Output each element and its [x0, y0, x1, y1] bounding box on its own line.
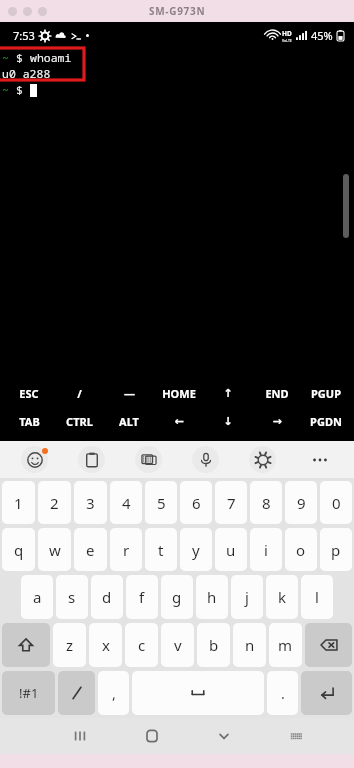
staticText: x: [102, 635, 110, 655]
button[interactable]: 7: [215, 481, 247, 524]
staticText: 7: [227, 493, 236, 513]
button[interactable]: ALT: [104, 407, 154, 435]
button[interactable]: More options: [291, 441, 348, 478]
button[interactable]: Home: [116, 718, 188, 754]
button[interactable]: 4: [110, 481, 142, 524]
button[interactable]: ,: [98, 671, 129, 715]
button[interactable]: PGDN: [301, 407, 350, 435]
button[interactable]: f: [126, 575, 158, 619]
staticText: o: [296, 540, 306, 560]
staticText: /: [77, 386, 82, 401]
button[interactable]: v: [161, 623, 194, 667]
button[interactable]: c: [125, 623, 158, 667]
staticText: u: [226, 540, 236, 560]
button[interactable]: Language: [58, 671, 95, 715]
staticText: r: [123, 540, 130, 560]
staticText: $: [9, 82, 30, 98]
staticText: PGDN: [310, 414, 342, 429]
button[interactable]: !#1: [2, 671, 55, 715]
button[interactable]: d: [91, 575, 123, 619]
button[interactable]: j: [231, 575, 263, 619]
button[interactable]: a: [21, 575, 53, 619]
staticText: !#1: [19, 684, 39, 702]
staticText: s: [68, 587, 76, 607]
staticText: whoami: [30, 50, 72, 66]
button[interactable]: 0: [320, 481, 352, 524]
button[interactable]: Keyboard layout: [260, 718, 332, 754]
button[interactable]: i: [250, 528, 282, 571]
button[interactable]: z: [53, 623, 86, 667]
button[interactable]: →: [252, 407, 301, 435]
button[interactable]: PGUP: [301, 379, 350, 407]
staticText: HOME: [162, 386, 196, 401]
button[interactable]: 8: [250, 481, 282, 524]
button[interactable]: e: [74, 528, 107, 571]
button[interactable]: g: [161, 575, 193, 619]
button[interactable]: 6: [180, 481, 212, 524]
button[interactable]: m: [269, 623, 302, 667]
button[interactable]: u: [215, 528, 247, 571]
staticText: TAB: [19, 414, 40, 429]
button[interactable]: l: [301, 575, 333, 619]
button[interactable]: ↓: [203, 407, 252, 435]
button[interactable]: s: [56, 575, 88, 619]
button[interactable]: r: [110, 528, 142, 571]
button[interactable]: x: [89, 623, 122, 667]
button[interactable]: t: [145, 528, 177, 571]
button[interactable]: Emoji: [6, 441, 63, 478]
button[interactable]: Space: [132, 671, 264, 715]
button[interactable]: /: [54, 379, 104, 407]
button[interactable]: p: [320, 528, 352, 571]
staticText: h: [207, 587, 217, 607]
button[interactable]: 1: [2, 481, 35, 524]
button[interactable]: y: [180, 528, 212, 571]
button[interactable]: n: [233, 623, 266, 667]
button[interactable]: b: [197, 623, 230, 667]
staticText: g: [172, 587, 182, 607]
staticText: k: [278, 587, 287, 607]
button[interactable]: q: [2, 528, 35, 571]
button[interactable]: w: [38, 528, 71, 571]
button[interactable]: ←: [154, 407, 203, 435]
staticText: ,: [112, 684, 116, 703]
staticText: ALT: [119, 414, 139, 429]
button[interactable]: 5: [145, 481, 177, 524]
staticText: j: [245, 587, 249, 607]
staticText: SM-G973N: [149, 4, 206, 18]
staticText: END: [265, 386, 289, 401]
button[interactable]: Clipboard: [63, 441, 120, 478]
button[interactable]: —: [104, 379, 154, 407]
staticText: b: [209, 635, 219, 655]
button[interactable]: Keyboard modes: [120, 441, 177, 478]
button[interactable]: Settings: [234, 441, 291, 478]
staticText: a: [33, 587, 42, 607]
button[interactable]: HOME: [154, 379, 203, 407]
button[interactable]: TAB: [4, 407, 54, 435]
staticText: —: [124, 386, 135, 401]
staticText: p: [331, 540, 341, 560]
button[interactable]: ↑: [203, 379, 252, 407]
button[interactable]: Recents: [44, 718, 116, 754]
staticText: PGUP: [311, 386, 341, 401]
button[interactable]: Backspace: [305, 623, 352, 667]
button[interactable]: Voice input: [177, 441, 234, 478]
button[interactable]: 3: [74, 481, 107, 524]
staticText: t: [158, 540, 164, 560]
button[interactable]: Shift: [2, 623, 50, 667]
staticText: 2: [50, 493, 59, 513]
button[interactable]: Hide keyboard: [188, 718, 260, 754]
button[interactable]: 2: [38, 481, 71, 524]
button[interactable]: Enter: [301, 671, 352, 715]
staticText: ESC: [19, 386, 39, 401]
button[interactable]: 9: [285, 481, 317, 524]
button[interactable]: k: [266, 575, 298, 619]
button[interactable]: CTRL: [54, 407, 104, 435]
staticText: 3: [86, 493, 95, 513]
button[interactable]: .: [267, 671, 298, 715]
button[interactable]: ESC: [4, 379, 54, 407]
button[interactable]: END: [252, 379, 301, 407]
button[interactable]: h: [196, 575, 228, 619]
button[interactable]: o: [285, 528, 317, 571]
staticText: 5: [157, 493, 166, 513]
staticText: ~: [2, 82, 9, 98]
